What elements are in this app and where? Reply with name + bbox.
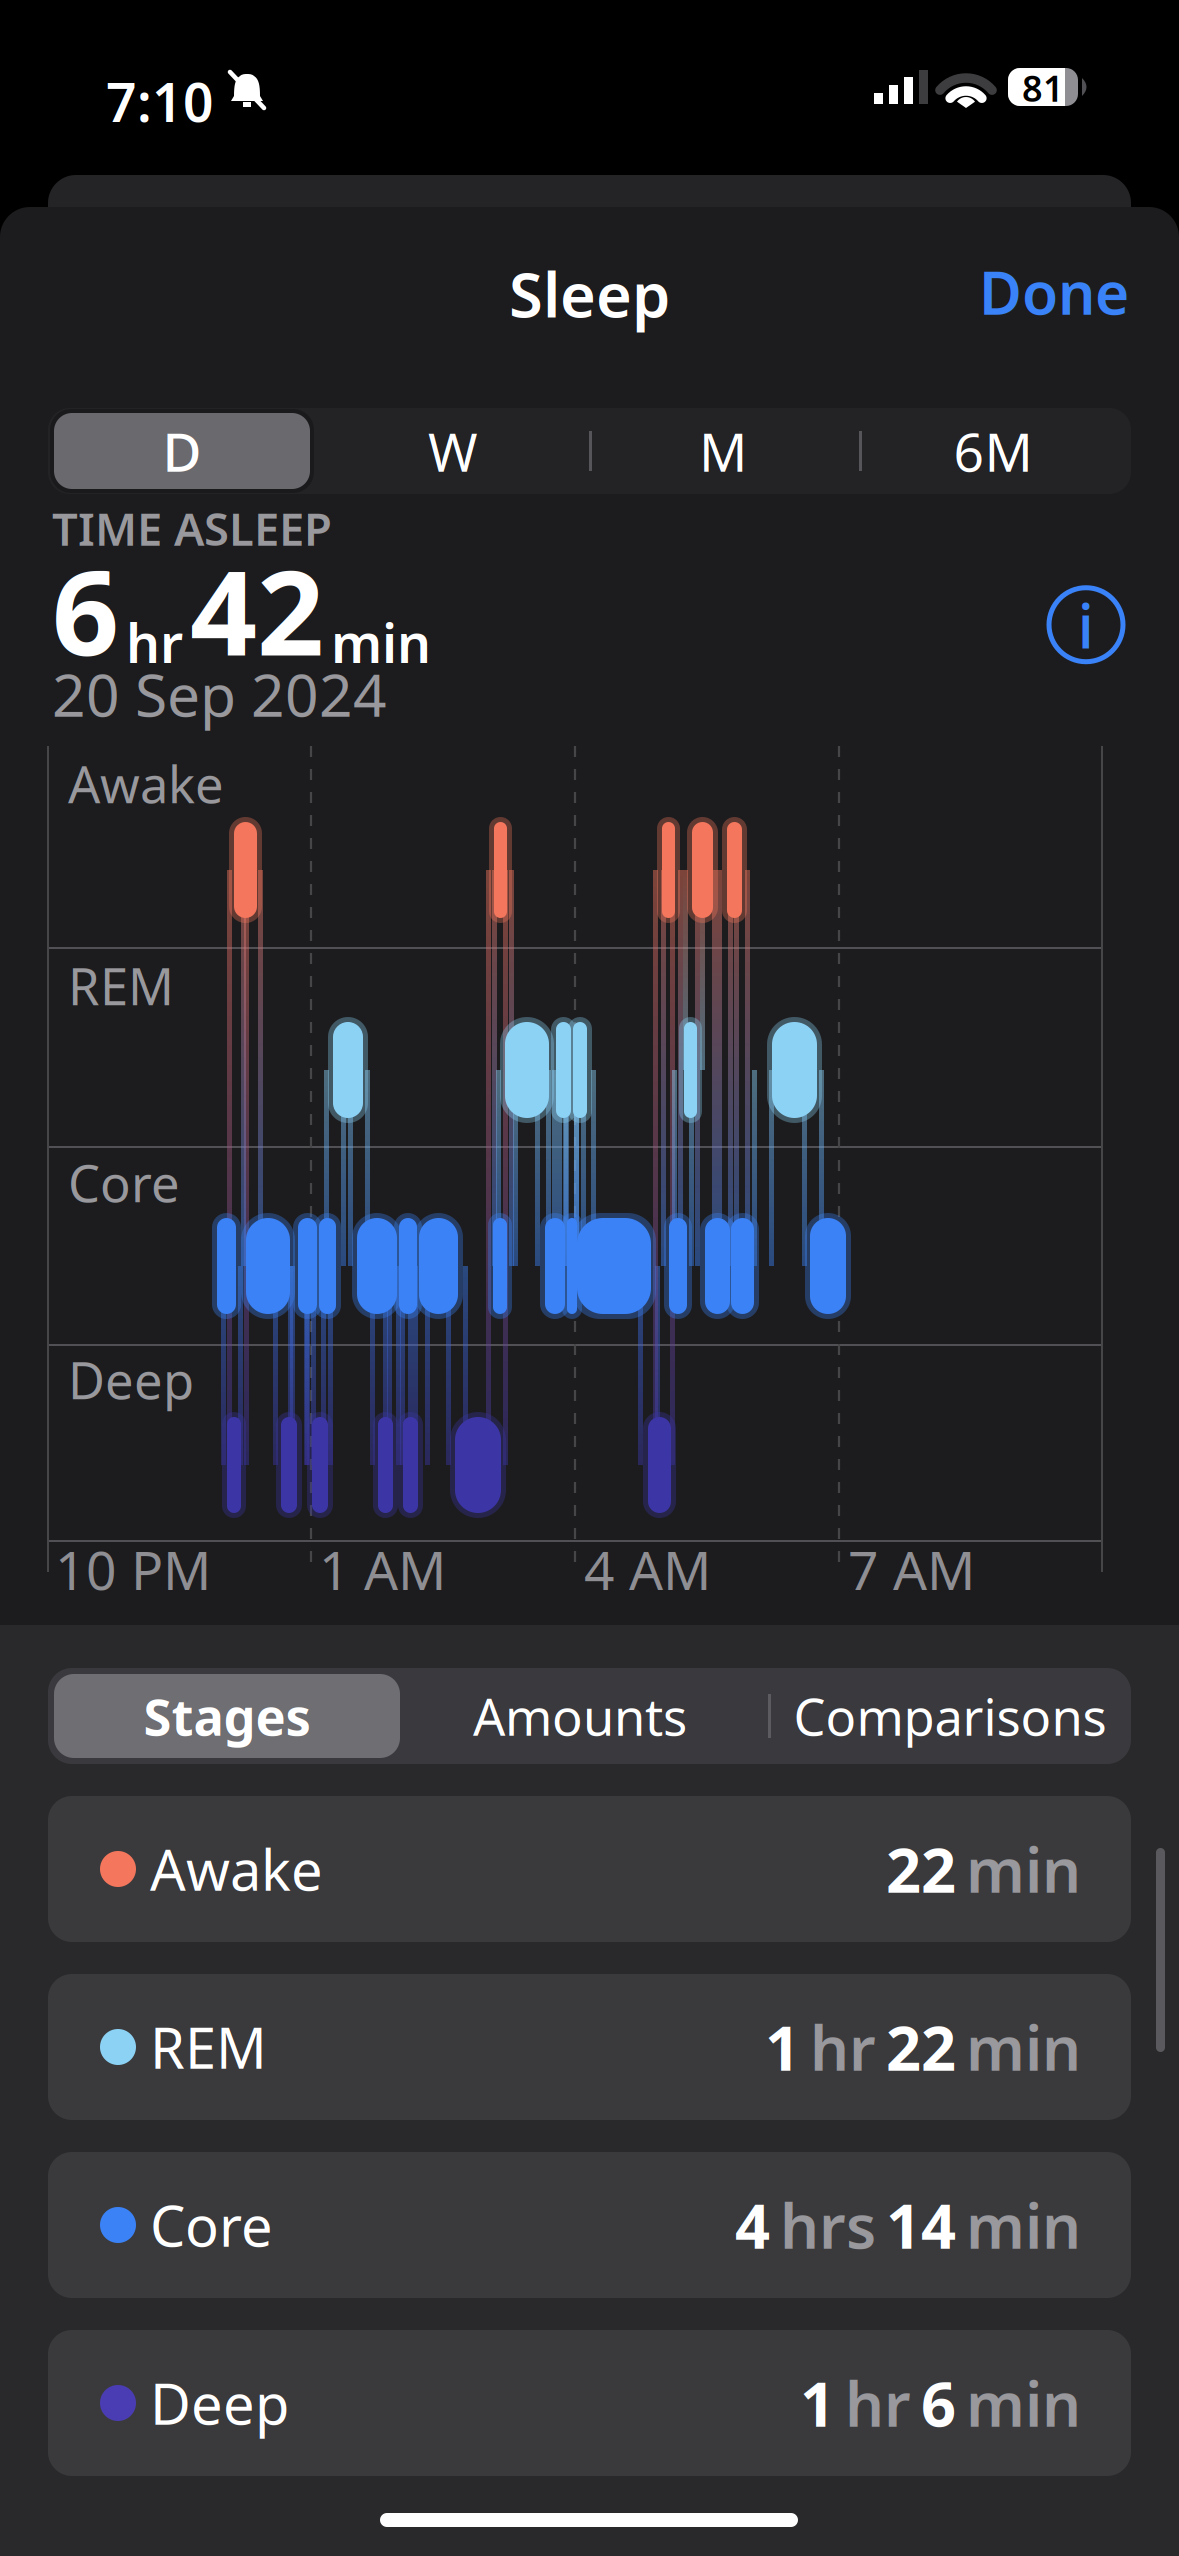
button[interactable]: About Time Asleep: [1049, 584, 1123, 665]
staticText: Core: [68, 1149, 180, 1216]
button[interactable]: Comparisons: [772, 1674, 1128, 1758]
staticText: M: [699, 416, 747, 486]
staticText: 7:10: [106, 66, 214, 137]
staticText: 22: [886, 1828, 956, 1910]
button[interactable]: Amounts: [430, 1674, 730, 1758]
staticText: hr: [845, 2362, 911, 2444]
button[interactable]: Done: [979, 253, 1129, 331]
button[interactable]: W: [338, 413, 568, 489]
staticText: Done: [979, 253, 1129, 331]
staticText: Comparisons: [793, 1682, 1106, 1750]
staticText: 1: [800, 2362, 835, 2444]
staticText: min: [966, 2006, 1081, 2088]
staticText: 6: [52, 532, 119, 688]
button[interactable]: D: [54, 413, 310, 489]
staticText: min: [966, 1828, 1081, 1910]
staticText: hr: [126, 607, 183, 678]
staticText: 4 AM: [584, 1534, 711, 1605]
staticText: 7 AM: [848, 1534, 975, 1605]
staticText: Deep: [68, 1346, 194, 1413]
staticText: 1 AM: [319, 1534, 446, 1605]
staticText: Awake: [150, 1832, 323, 1906]
staticText: 22: [886, 2006, 956, 2088]
staticText: 1: [765, 2006, 800, 2088]
staticText: hr: [810, 2006, 876, 2088]
staticText: 6M: [953, 416, 1032, 486]
staticText: W: [428, 416, 478, 486]
button[interactable]: Stages: [54, 1674, 400, 1758]
staticText: 20 Sep 2024: [52, 655, 387, 733]
staticText: 42: [190, 532, 324, 688]
staticText: min: [331, 607, 431, 678]
staticText: D: [162, 416, 201, 486]
staticText: 81: [1022, 64, 1064, 112]
staticText: i: [1077, 584, 1094, 665]
staticText: 6: [921, 2362, 956, 2444]
button[interactable]: M: [608, 413, 838, 489]
staticText: 10 PM: [55, 1534, 211, 1605]
staticText: Stages: [143, 1682, 310, 1750]
staticText: 14: [886, 2184, 956, 2266]
button[interactable]: 6M: [878, 413, 1108, 489]
staticText: hrs: [780, 2184, 876, 2266]
staticText: min: [966, 2362, 1081, 2444]
staticText: REM: [68, 952, 174, 1019]
staticText: Awake: [68, 750, 224, 817]
staticText: 4: [735, 2184, 770, 2266]
staticText: TIME ASLEEP: [52, 498, 332, 558]
staticText: Deep: [150, 2366, 289, 2440]
staticText: Sleep: [509, 253, 670, 334]
staticText: Core: [150, 2188, 273, 2262]
staticText: Amounts: [473, 1682, 687, 1750]
staticText: REM: [150, 2010, 267, 2084]
staticText: min: [966, 2184, 1081, 2266]
